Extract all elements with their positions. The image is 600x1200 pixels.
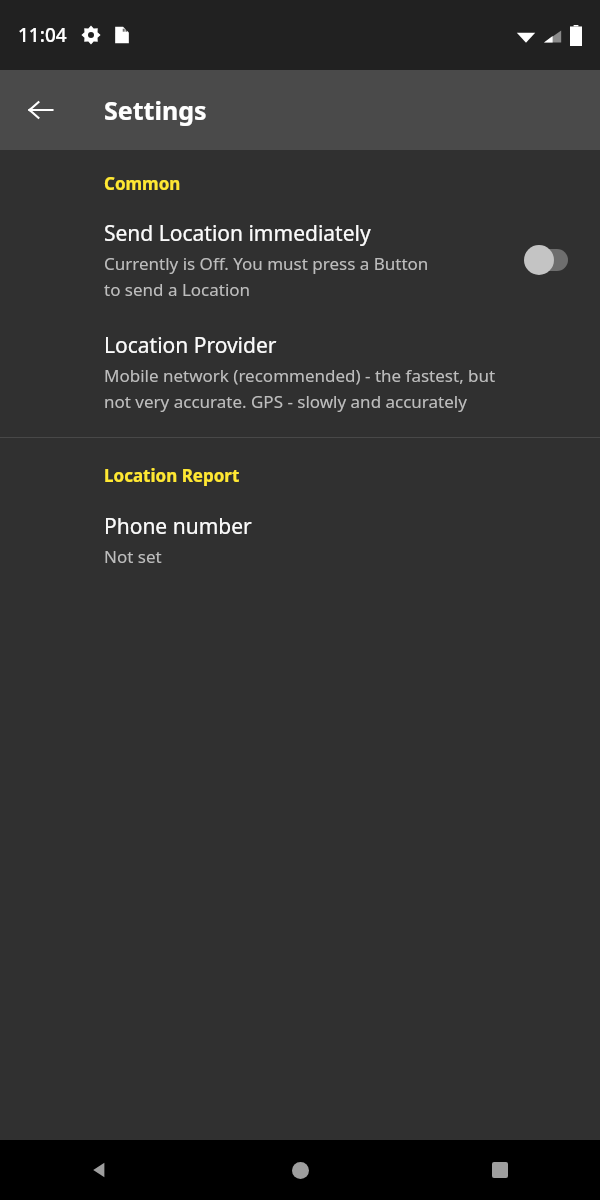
button[interactable]: Recent apps bbox=[400, 1140, 600, 1200]
button[interactable]: Phone number bbox=[0, 512, 600, 568]
staticText: Mobile network (recommended) - the faste… bbox=[104, 364, 496, 413]
button[interactable]: Location Provider bbox=[0, 331, 600, 413]
staticText: Common bbox=[104, 172, 181, 195]
staticText: 11:04 bbox=[18, 22, 67, 48]
staticText: Location Provider bbox=[104, 331, 277, 360]
staticText: Currently is Off. You must press a Butto… bbox=[104, 252, 429, 301]
staticText: Send Location immediately bbox=[104, 219, 371, 248]
button[interactable]: Back bbox=[0, 1140, 200, 1200]
staticText: Not set bbox=[104, 545, 162, 568]
button[interactable]: Home bbox=[200, 1140, 400, 1200]
staticText: Phone number bbox=[104, 512, 252, 541]
staticText: Location Report bbox=[104, 464, 240, 487]
button[interactable]: Back bbox=[17, 86, 65, 134]
button[interactable]: Send Location immediately toggle bbox=[520, 240, 576, 280]
button[interactable]: Send Location immediately bbox=[0, 219, 600, 301]
staticText: Settings bbox=[104, 93, 207, 127]
